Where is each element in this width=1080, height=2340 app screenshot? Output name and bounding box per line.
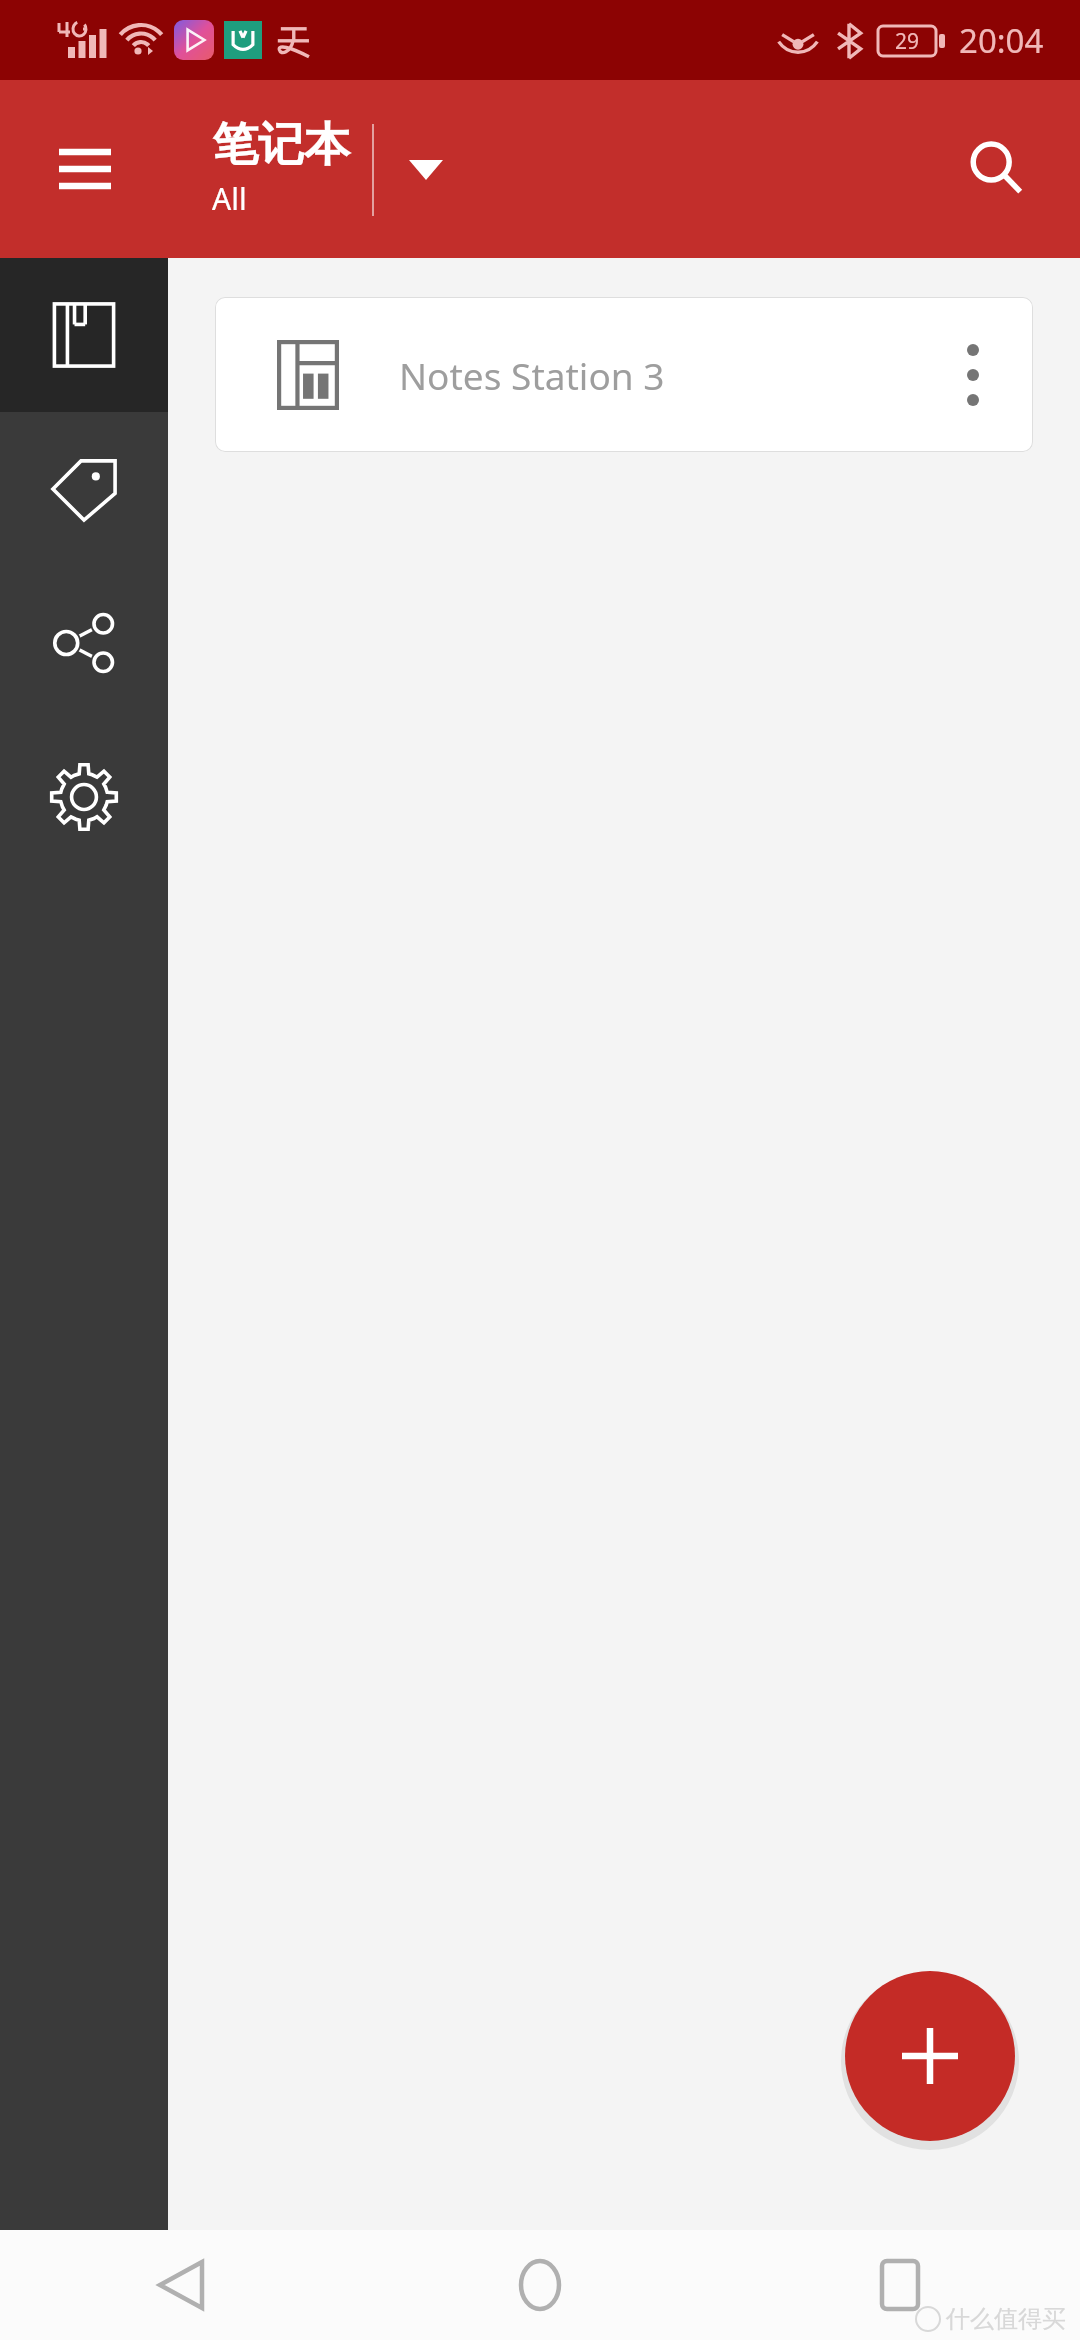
button[interactable]: Tags [0, 412, 168, 566]
button[interactable]: Search [942, 114, 1052, 224]
button[interactable]: More options [923, 325, 1023, 425]
staticText: 什么值得买 [946, 2304, 1066, 2334]
button[interactable]: Notes Station 3 [215, 297, 1033, 452]
button[interactable]: 笔记本 [212, 116, 454, 223]
button[interactable]: Notebooks [0, 258, 168, 412]
button[interactable]: Shared [0, 566, 168, 720]
button[interactable]: Recent apps [720, 2230, 1080, 2340]
staticText: 笔记本 [212, 116, 350, 174]
staticText: 29 [895, 27, 920, 56]
button[interactable]: Back [0, 2230, 360, 2340]
staticText: 20:04 [959, 18, 1044, 63]
button[interactable]: Home [360, 2230, 720, 2340]
button[interactable]: Settings [0, 720, 168, 874]
button[interactable]: Open navigation drawer [30, 114, 140, 224]
button[interactable]: Create note [845, 1971, 1015, 2141]
staticText: Notes Station 3 [399, 350, 665, 400]
staticText: All [212, 178, 247, 219]
